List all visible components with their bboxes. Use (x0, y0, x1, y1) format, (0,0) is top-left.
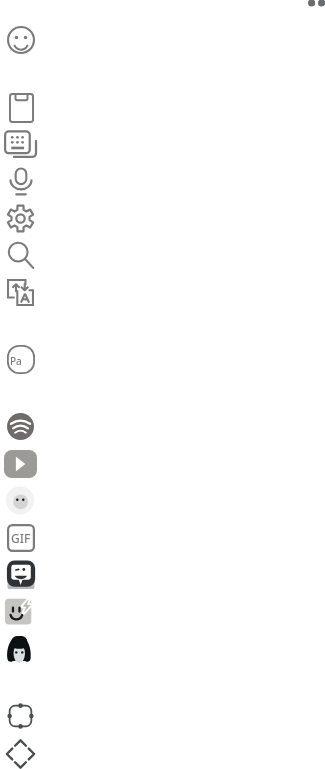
button[interactable]: Avatar (6, 636, 32, 665)
button[interactable]: One handed mode (4, 129, 37, 160)
button[interactable]: Translate (6, 278, 35, 307)
button[interactable]: GIF (7, 524, 35, 552)
button[interactable]: Stickers (5, 487, 35, 514)
button[interactable]: Search (7, 241, 35, 270)
button[interactable]: Emoji kitchen (4, 597, 35, 625)
button[interactable]: Bitmoji (6, 560, 37, 589)
button[interactable]: Move (5, 739, 36, 769)
button[interactable]: Resize (6, 702, 35, 730)
button[interactable]: Spotify (7, 412, 34, 441)
button[interactable]: Voice input (7, 167, 35, 197)
button[interactable]: Clipboard (9, 93, 34, 123)
button[interactable]: YouTube (4, 450, 37, 478)
button[interactable]: Emoji (7, 26, 35, 54)
staticText: GIF (11, 530, 31, 546)
button[interactable]: Settings (6, 204, 35, 233)
staticText: Pa (10, 354, 22, 368)
button[interactable]: Paste (7, 345, 35, 374)
